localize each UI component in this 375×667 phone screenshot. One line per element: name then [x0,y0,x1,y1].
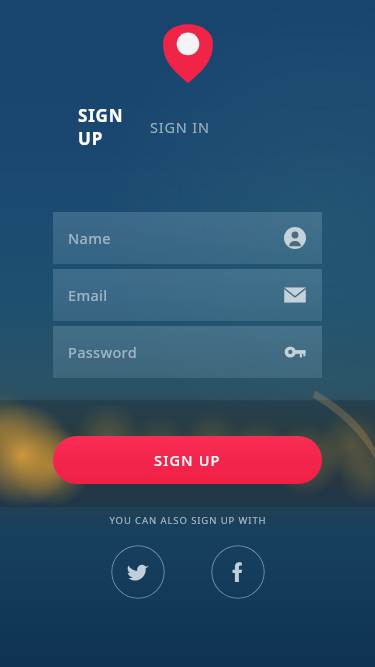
button[interactable]: Email [53,269,322,321]
staticText: Email [68,285,108,305]
button[interactable]: SIGN IN [150,117,210,137]
button[interactable]: Password [53,326,322,378]
button[interactable]: Name [53,212,322,264]
button[interactable]: SIGN UP [53,436,322,484]
staticText: SIGN IN [150,117,210,137]
staticText: SIGN UP [154,450,221,470]
staticText: SIGN UP [78,104,150,150]
staticText: Password [68,342,138,362]
staticText: YOU CAN ALSO SIGN UP WITH [109,514,267,527]
button[interactable]: SIGN UP [78,104,150,150]
staticText: Name [68,228,111,248]
button[interactable]: Sign up with Twitter [111,545,165,599]
button[interactable]: Sign up with Facebook [211,545,265,599]
